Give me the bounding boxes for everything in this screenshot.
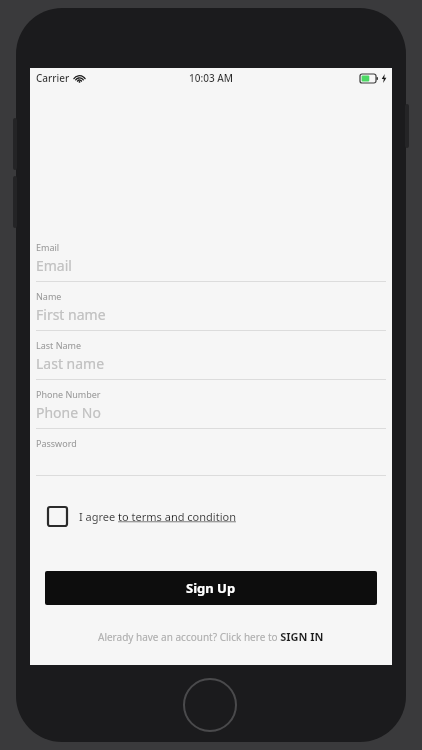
button[interactable]: Name [36, 290, 386, 331]
staticText: Email [36, 241, 60, 253]
staticText: Email [36, 256, 72, 275]
staticText: Phone No [36, 403, 101, 422]
button[interactable]: Last Name [36, 339, 386, 380]
button[interactable]: Phone Number [36, 388, 386, 429]
staticText: Name [36, 290, 62, 302]
button[interactable]: I agree to terms and condition [36, 507, 386, 526]
button[interactable]: Password [36, 437, 386, 476]
staticText: Last name [36, 354, 105, 373]
button[interactable]: Email [36, 241, 386, 282]
staticText: Alerady have an account? Click here to S… [98, 629, 324, 644]
staticText: Last Name [36, 339, 82, 351]
staticText: Phone Number [36, 388, 101, 400]
button[interactable]: Alerady have an account? Click here to S… [36, 629, 386, 644]
staticText: Password [36, 437, 77, 449]
staticText: First name [36, 305, 106, 324]
staticText: Sign Up [186, 579, 236, 597]
staticText: 10:03 AM [189, 71, 233, 85]
button[interactable]: Sign Up [45, 571, 377, 605]
staticText: I agree to terms and condition [79, 509, 236, 524]
staticText: Carrier [36, 71, 70, 85]
